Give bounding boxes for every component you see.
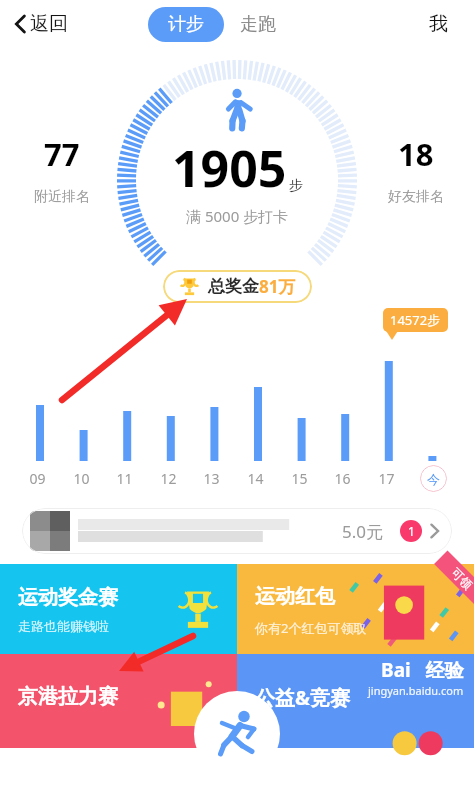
staticText: 计步 [168, 13, 204, 36]
staticText: 16 [334, 469, 351, 488]
staticText: 你有2个红包可领取 [255, 619, 367, 637]
button[interactable]: 京港拉力赛 [0, 654, 237, 748]
button[interactable]: 我 [423, 6, 454, 42]
button[interactable]: 总奖金 [163, 270, 312, 303]
staticText: 09 [29, 469, 46, 488]
staticText: 京港拉力赛 [18, 684, 118, 709]
staticText: 18 [398, 133, 434, 175]
button[interactable]: Back [8, 8, 74, 40]
staticText: 满 5000 步打卡 [186, 206, 289, 226]
staticText: 77 [44, 133, 80, 175]
staticText: jingyan.baidu.com [368, 683, 464, 698]
staticText: 走路也能赚钱啦 [18, 618, 109, 634]
staticText: 1905 [172, 134, 287, 202]
staticText: 81万 [259, 275, 296, 298]
button[interactable]: 公益&竞赛 [237, 654, 474, 748]
button[interactable]: 今 [420, 465, 447, 492]
staticText: 15 [291, 469, 308, 488]
staticText: 运动红包 [255, 584, 335, 609]
button[interactable]: 运动红包 [237, 564, 474, 654]
staticText: 11 [116, 469, 133, 488]
staticText: 公益&竞赛 [255, 684, 350, 711]
staticText: Bai 经验 [381, 657, 464, 683]
staticText: 好友排名 [388, 188, 444, 206]
staticText: 运动奖金赛 [18, 585, 118, 610]
button[interactable]: 5.0元 [22, 508, 452, 554]
staticText: 今 [427, 471, 440, 487]
staticText: 17 [378, 469, 395, 488]
staticText: 附近排名 [34, 188, 90, 206]
button[interactable]: 走跑 [224, 7, 292, 42]
staticText: 走跑 [240, 13, 276, 36]
staticText: 14 [247, 469, 264, 488]
button[interactable]: 计步 [148, 7, 224, 42]
staticText: 12 [160, 469, 177, 488]
staticText: 1 [408, 523, 415, 539]
staticText: 10 [73, 469, 90, 488]
button[interactable]: 运动奖金赛 [0, 564, 237, 654]
button[interactable]: Start workout [194, 691, 280, 777]
staticText: 14572步 [390, 311, 441, 329]
staticText: 我 [429, 12, 448, 36]
staticText: 步 [289, 177, 303, 195]
staticText: 总奖金 [208, 276, 259, 297]
staticText: 返回 [30, 12, 68, 36]
staticText: 可领 [448, 565, 474, 592]
staticText: 13 [203, 469, 220, 488]
staticText: 5.0元 [342, 520, 384, 543]
